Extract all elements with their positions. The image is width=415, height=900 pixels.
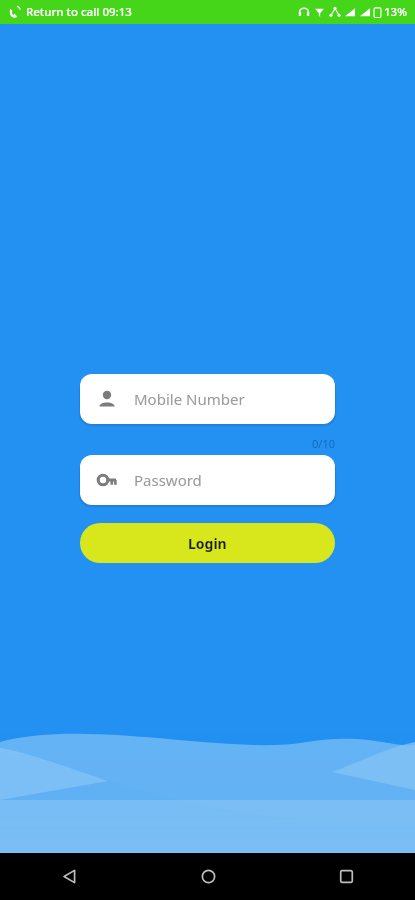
button[interactable]: Recent apps xyxy=(277,853,415,900)
staticText: Password xyxy=(134,470,202,490)
button[interactable]: Login xyxy=(80,523,335,563)
button[interactable]: Home xyxy=(139,853,277,900)
staticText: Mobile Number xyxy=(134,389,245,409)
button[interactable]: Password field xyxy=(80,455,335,505)
button[interactable]: Mobile Number field xyxy=(80,374,335,424)
staticText: 13% xyxy=(384,4,407,20)
button[interactable]: Back xyxy=(0,853,139,900)
staticText: Login xyxy=(188,534,227,553)
staticText: Return to call 09:13 xyxy=(26,4,132,20)
staticText: 0/10 xyxy=(80,436,335,451)
